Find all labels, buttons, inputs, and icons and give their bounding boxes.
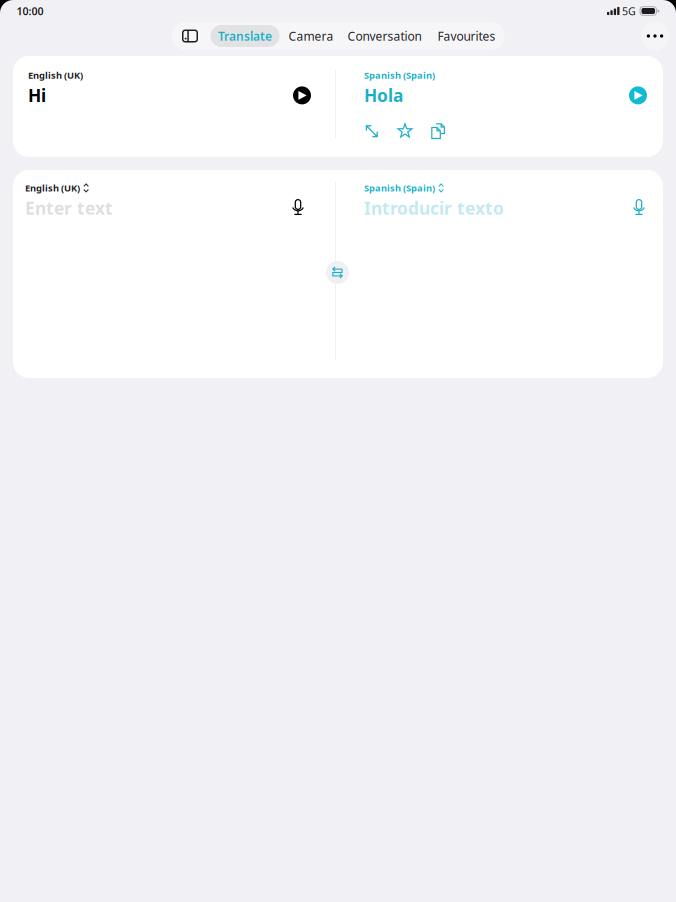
button[interactable]: Show full screen xyxy=(364,123,380,139)
staticText: Translate xyxy=(218,28,272,44)
button[interactable]: Camera xyxy=(281,22,340,50)
button[interactable]: Copy translation xyxy=(430,123,446,139)
staticText: Favourites xyxy=(437,28,495,44)
staticText: Hi xyxy=(28,84,46,107)
button[interactable]: More options xyxy=(641,22,669,50)
staticText: Spanish (Spain) xyxy=(364,69,435,81)
button[interactable]: Dictate in English xyxy=(287,197,309,219)
button[interactable]: Play Spanish translation xyxy=(626,83,650,107)
staticText: Enter text xyxy=(25,196,113,219)
button[interactable]: Favourites xyxy=(428,22,504,50)
button[interactable]: Play English translation xyxy=(290,83,314,107)
staticText: English (UK) xyxy=(28,69,83,81)
staticText: Hola xyxy=(364,84,403,107)
staticText: Camera xyxy=(288,28,333,44)
button[interactable]: Dictate in Spanish xyxy=(628,197,650,219)
staticText: 5G xyxy=(622,4,636,18)
button[interactable]: Show sidebar xyxy=(171,22,208,50)
button[interactable]: Translate xyxy=(208,22,281,50)
staticText: Spanish (Spain) xyxy=(364,182,435,194)
staticText: 10:00 xyxy=(16,4,43,18)
staticText: Conversation xyxy=(347,28,421,44)
button[interactable]: Add to favourites xyxy=(397,123,413,139)
staticText: Introducir texto xyxy=(364,196,504,219)
staticText: English (UK) xyxy=(25,182,80,194)
button[interactable]: Swap languages xyxy=(326,261,349,284)
button[interactable]: Conversation xyxy=(340,22,428,50)
